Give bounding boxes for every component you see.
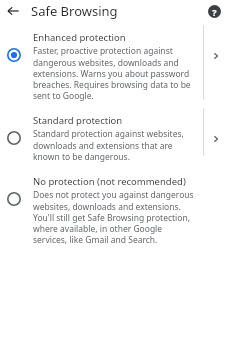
button[interactable]: Help <box>204 1 224 21</box>
button[interactable]: No protection (not recommended) <box>0 167 229 250</box>
staticText: Does not protect you against dangerous w… <box>33 189 197 246</box>
staticText: Standard protection <box>33 114 123 127</box>
button[interactable]: Enhanced protection <box>0 22 229 106</box>
staticText: Standard protection against websites, do… <box>33 128 197 163</box>
button[interactable]: More about Standard protection <box>205 128 227 150</box>
staticText: Faster, proactive protection against dan… <box>33 45 197 102</box>
staticText: Safe Browsing <box>31 2 118 20</box>
button[interactable]: More about Enhanced protection <box>205 45 227 67</box>
button[interactable]: Back <box>4 2 22 20</box>
staticText: No protection (not recommended) <box>33 175 186 188</box>
staticText: Enhanced protection <box>33 31 126 44</box>
staticText: ? <box>212 6 217 18</box>
button[interactable]: Standard protection <box>0 106 229 167</box>
